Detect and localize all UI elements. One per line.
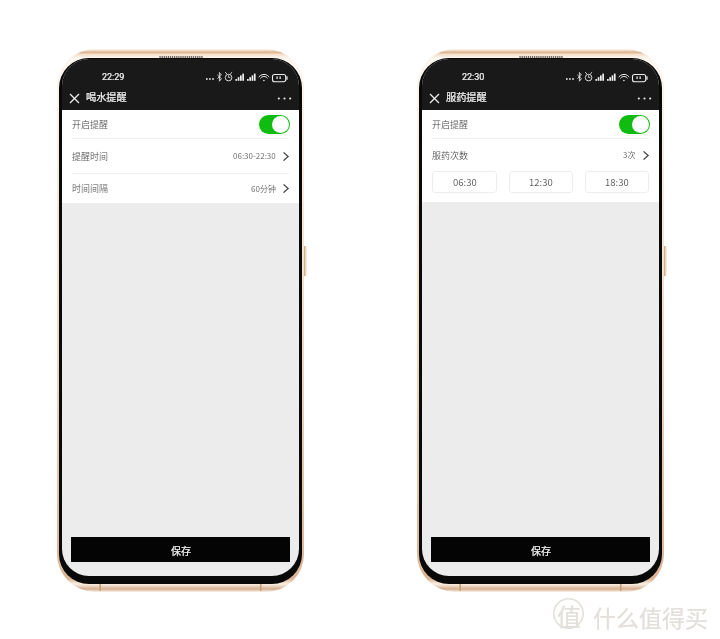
staticText: 值 — [557, 598, 581, 629]
button[interactable]: More options — [274, 88, 294, 108]
button[interactable]: 时间间隔 — [62, 174, 299, 203]
staticText: 06:30 — [453, 175, 477, 189]
staticText: 服药次数 — [432, 149, 469, 162]
button[interactable]: 保存 — [431, 537, 650, 562]
button[interactable]: 保存 — [71, 537, 290, 562]
staticText: 喝水提醒 — [86, 89, 127, 104]
button[interactable]: 06:30 — [432, 171, 497, 193]
button[interactable]: More options — [634, 88, 654, 108]
staticText: 60分钟 — [251, 183, 276, 195]
staticText: 12:30 — [529, 175, 553, 189]
button[interactable]: 18:30 — [585, 171, 649, 193]
staticText: 开启提醒 — [72, 118, 109, 131]
staticText: 22:29 — [102, 72, 125, 83]
button[interactable]: 服药次数 — [422, 139, 659, 171]
staticText: 保存 — [171, 543, 191, 557]
button[interactable]: Close — [64, 88, 84, 108]
staticText: 保存 — [531, 543, 551, 557]
button[interactable]: Close — [424, 88, 444, 108]
button[interactable]: 开启提醒 — [422, 110, 659, 138]
staticText: 时间间隔 — [72, 182, 109, 195]
button[interactable]: 12:30 — [509, 171, 573, 193]
staticText: 18:30 — [605, 175, 629, 189]
staticText: 开启提醒 — [432, 118, 469, 131]
button[interactable]: 开启提醒 — [62, 110, 299, 138]
staticText: 什么值得买 — [593, 600, 708, 633]
button[interactable]: 提醒时间 — [62, 139, 299, 173]
staticText: 22:30 — [462, 72, 485, 83]
staticText: 提醒时间 — [72, 150, 109, 163]
staticText: 3次 — [623, 149, 636, 161]
staticText: 服药提醒 — [446, 89, 487, 104]
staticText: 06:30-22:30 — [233, 150, 276, 162]
